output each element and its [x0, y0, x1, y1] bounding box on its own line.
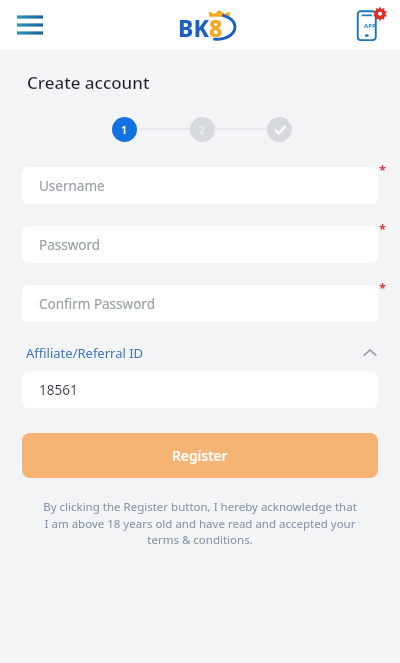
other: Collapse: [362, 345, 378, 361]
staticText: *: [379, 161, 387, 179]
staticText: *: [379, 220, 387, 238]
staticText: Username: [39, 177, 105, 195]
button[interactable]: BK8 home: [162, 8, 238, 42]
staticText: BK: [178, 12, 209, 43]
button[interactable]: Menu: [10, 5, 50, 45]
staticText: Create account: [27, 71, 150, 94]
button[interactable]: Register: [22, 433, 378, 478]
staticText: 18561: [39, 381, 78, 399]
button[interactable]: Username: [22, 167, 378, 204]
staticText: Password: [39, 236, 101, 254]
button[interactable]: Password: [22, 226, 378, 263]
staticText: *: [379, 279, 387, 297]
button[interactable]: Confirm Password: [22, 285, 378, 322]
staticText: 2: [199, 122, 206, 137]
button[interactable]: [267, 117, 292, 142]
staticText: APP: [364, 22, 376, 30]
staticText: 8: [209, 12, 223, 43]
button[interactable]: 18561: [22, 371, 378, 408]
staticText: Affiliate/Referral ID: [26, 344, 144, 362]
button[interactable]: 1: [112, 117, 137, 142]
button[interactable]: Download app: [352, 7, 388, 43]
staticText: Register: [172, 446, 228, 465]
staticText: By clicking the Register button, I hereb…: [42, 499, 358, 547]
button[interactable]: 2: [190, 117, 215, 142]
button[interactable]: Affiliate/Referral ID: [26, 342, 378, 364]
staticText: 1: [121, 122, 128, 137]
staticText: Confirm Password: [39, 295, 155, 313]
